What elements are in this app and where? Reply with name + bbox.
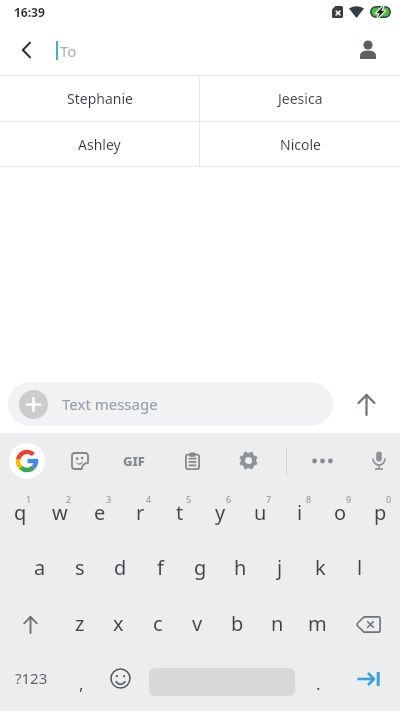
button[interactable]: Text message — [8, 382, 333, 426]
button[interactable]: h — [220, 543, 260, 599]
staticText: o — [334, 499, 347, 526]
staticText: 7 — [266, 493, 272, 505]
button[interactable]: v — [177, 599, 217, 655]
staticText: Ashley — [78, 135, 121, 154]
staticText: . — [316, 672, 321, 695]
button[interactable]: f — [140, 543, 180, 599]
staticText: Stephanie — [67, 89, 133, 108]
button[interactable] — [224, 433, 272, 488]
staticText: w — [52, 499, 68, 526]
staticText: 0 — [386, 493, 392, 505]
staticText: k — [315, 554, 326, 581]
staticText: z — [75, 610, 85, 637]
button[interactable]: Nicole — [200, 122, 400, 166]
staticText: h — [234, 554, 247, 581]
staticText: g — [194, 554, 207, 581]
staticText: y — [215, 499, 226, 526]
staticText: x — [113, 610, 124, 637]
button[interactable]: e — [80, 488, 120, 543]
button[interactable]: Stephanie — [0, 76, 199, 121]
button[interactable] — [53, 433, 107, 488]
button[interactable] — [332, 655, 400, 711]
staticText: GIF — [123, 452, 145, 470]
button[interactable]: w — [40, 488, 80, 543]
staticText: 9 — [346, 493, 352, 505]
button[interactable]: b — [217, 599, 257, 655]
staticText: v — [192, 610, 203, 637]
staticText: p — [374, 499, 387, 526]
staticText: a — [34, 554, 46, 581]
button[interactable]: q — [0, 488, 40, 543]
button[interactable] — [0, 433, 53, 488]
staticText: 8 — [306, 493, 312, 505]
staticText: d — [114, 554, 127, 581]
button[interactable]: i — [280, 488, 320, 543]
button[interactable]: g — [180, 543, 220, 599]
button[interactable]: r — [120, 488, 160, 543]
staticText: c — [153, 610, 163, 637]
button[interactable]: Jeesica — [200, 76, 400, 121]
button[interactable]: c — [138, 599, 177, 655]
button[interactable] — [337, 599, 400, 655]
staticText: ?123 — [15, 668, 48, 688]
button[interactable]: n — [257, 599, 297, 655]
staticText: 16:39 — [14, 4, 45, 20]
staticText: e — [94, 499, 106, 526]
button[interactable]: Ashley — [0, 122, 199, 166]
button[interactable]: s — [60, 543, 100, 599]
button[interactable]: l — [340, 543, 380, 599]
staticText: Jeesica — [278, 89, 323, 108]
staticText: r — [136, 499, 145, 526]
button[interactable]: t — [160, 488, 200, 543]
staticText: q — [14, 499, 27, 526]
button[interactable]: o — [320, 488, 360, 543]
staticText: f — [157, 554, 164, 581]
staticText: 2 — [66, 493, 72, 505]
staticText: 3 — [106, 493, 112, 505]
staticText: , — [79, 672, 84, 695]
button[interactable] — [5, 24, 49, 75]
staticText: l — [357, 554, 363, 581]
staticText: Nicole — [280, 135, 321, 154]
button[interactable] — [357, 433, 400, 488]
button[interactable] — [160, 433, 224, 488]
button[interactable]: k — [300, 543, 340, 599]
staticText: b — [231, 610, 244, 637]
button[interactable] — [333, 382, 400, 426]
staticText: 4 — [146, 493, 152, 505]
button[interactable] — [19, 390, 48, 419]
button[interactable]: y — [200, 488, 240, 543]
staticText: t — [176, 499, 184, 526]
staticText: u — [254, 499, 267, 526]
button[interactable]: , — [62, 655, 100, 711]
button[interactable]: j — [260, 543, 300, 599]
staticText: j — [277, 554, 283, 581]
button[interactable]: d — [100, 543, 140, 599]
button[interactable] — [287, 433, 357, 488]
button[interactable]: ?123 — [0, 655, 62, 711]
button[interactable] — [336, 24, 400, 75]
button[interactable]: GIF — [107, 433, 160, 488]
staticText: To — [60, 41, 77, 61]
button[interactable]: m — [297, 599, 337, 655]
button[interactable] — [0, 599, 60, 655]
button[interactable]: . — [304, 655, 332, 711]
staticText: 5 — [186, 493, 192, 505]
staticText: 6 — [226, 493, 232, 505]
button[interactable]: x — [99, 599, 138, 655]
button[interactable]: a — [20, 543, 60, 599]
staticText: m — [308, 610, 327, 637]
staticText: 1 — [26, 493, 32, 505]
button[interactable]: p — [360, 488, 400, 543]
staticText: Text message — [62, 394, 158, 414]
staticText: n — [271, 610, 284, 637]
button[interactable]: z — [60, 599, 99, 655]
staticText: i — [297, 499, 303, 526]
button[interactable]: u — [240, 488, 280, 543]
button[interactable] — [100, 655, 140, 711]
staticText: s — [75, 554, 85, 581]
